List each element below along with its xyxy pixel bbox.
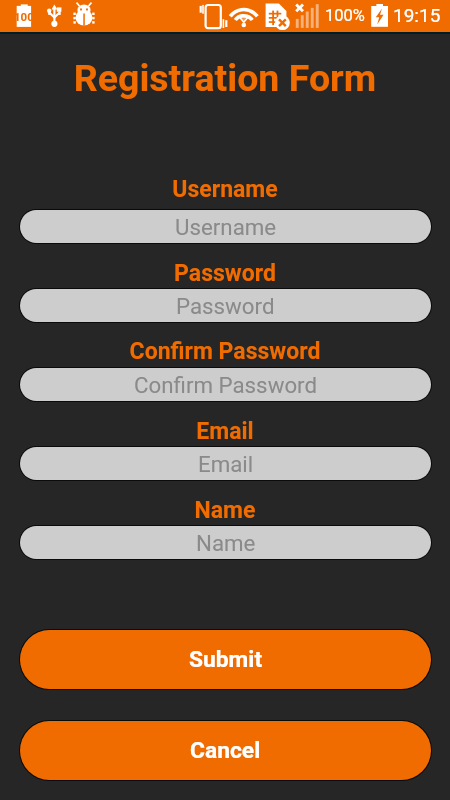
button[interactable]: Name (20, 526, 431, 559)
staticText: Username (0, 176, 450, 203)
staticText: Confirm Password (134, 372, 318, 398)
staticText: 100% (325, 6, 365, 25)
button[interactable]: Password (20, 289, 431, 322)
staticText: Username (175, 214, 277, 240)
staticText: Confirm Password (0, 338, 450, 365)
staticText: Email (198, 451, 254, 477)
button[interactable]: Email (20, 447, 431, 480)
button[interactable]: Submit (20, 630, 431, 689)
button[interactable]: Username (20, 210, 431, 243)
staticText: 19:15 (393, 4, 441, 26)
staticText: Cancel (190, 737, 261, 764)
button[interactable]: Cancel (20, 721, 431, 780)
staticText: Password (0, 260, 450, 287)
staticText: Email (0, 418, 450, 445)
staticText: Submit (189, 646, 263, 673)
staticText: Password (176, 293, 275, 319)
staticText: Registration Form (0, 56, 450, 100)
staticText: Name (0, 497, 450, 524)
button[interactable]: Confirm Password (20, 368, 431, 401)
staticText: 100 (14, 10, 34, 23)
staticText: Name (196, 530, 256, 556)
